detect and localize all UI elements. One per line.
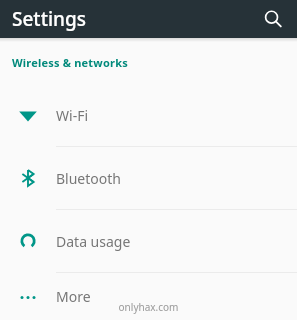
button[interactable]: More — [0, 273, 297, 320]
staticText: onlyhax.com — [0, 300, 297, 314]
staticText: Wireless & networks — [12, 55, 128, 70]
button[interactable]: Bluetooth — [0, 147, 297, 210]
staticText: Data usage — [56, 232, 131, 251]
staticText: Settings — [12, 6, 86, 32]
staticText: Bluetooth — [56, 169, 121, 188]
staticText: More — [56, 287, 91, 306]
button[interactable]: Data usage — [0, 210, 297, 273]
button[interactable]: Search — [257, 3, 289, 35]
button[interactable]: Wi-Fi — [0, 84, 297, 147]
staticText: Wi-Fi — [56, 106, 89, 125]
